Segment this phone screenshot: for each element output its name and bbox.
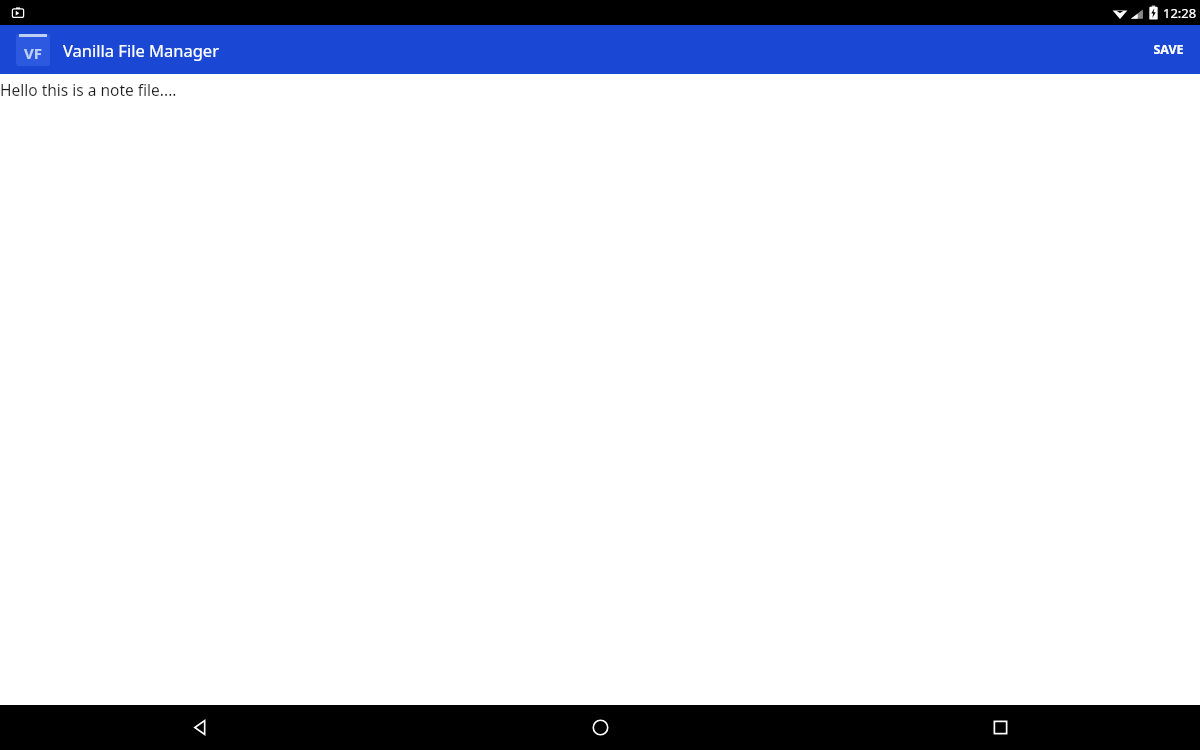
staticText: 12:28 xyxy=(1163,4,1197,22)
button[interactable]: SAVE xyxy=(1137,29,1200,70)
button[interactable]: Recents xyxy=(800,705,1200,750)
button[interactable]: Back xyxy=(0,705,400,750)
staticText: Vanilla File Manager xyxy=(63,39,1137,61)
other: App icon xyxy=(14,31,52,69)
staticText: Hello this is a note file.... xyxy=(0,79,1200,100)
staticText: SAVE xyxy=(1153,41,1184,58)
button[interactable]: Home xyxy=(400,705,800,750)
staticText: VF xyxy=(24,43,42,63)
